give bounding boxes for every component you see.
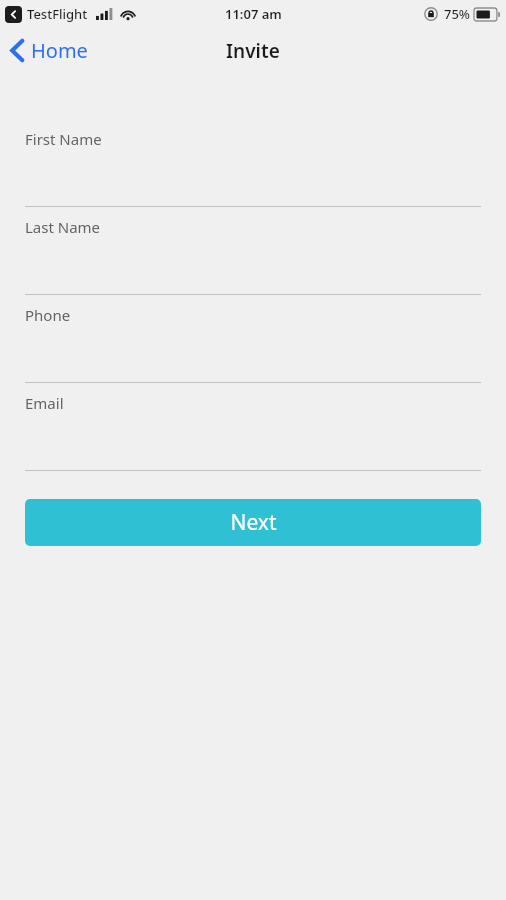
button[interactable]: Phone: [0, 295, 506, 383]
staticText: TestFlight: [27, 5, 88, 23]
staticText: Phone: [25, 305, 71, 325]
button[interactable]: Last Name: [0, 207, 506, 295]
button[interactable]: Home: [0, 31, 100, 70]
button[interactable]: Next: [25, 499, 481, 546]
staticText: 75%: [444, 5, 470, 23]
staticText: Home: [31, 37, 88, 64]
staticText: Next: [230, 508, 277, 537]
staticText: First Name: [25, 129, 102, 149]
staticText: Last Name: [25, 217, 101, 237]
button[interactable]: Email: [0, 383, 506, 471]
staticText: Email: [25, 393, 64, 413]
staticText: 11:07 am: [225, 5, 282, 23]
button[interactable]: First Name: [0, 119, 506, 207]
staticText: Invite: [226, 38, 280, 64]
